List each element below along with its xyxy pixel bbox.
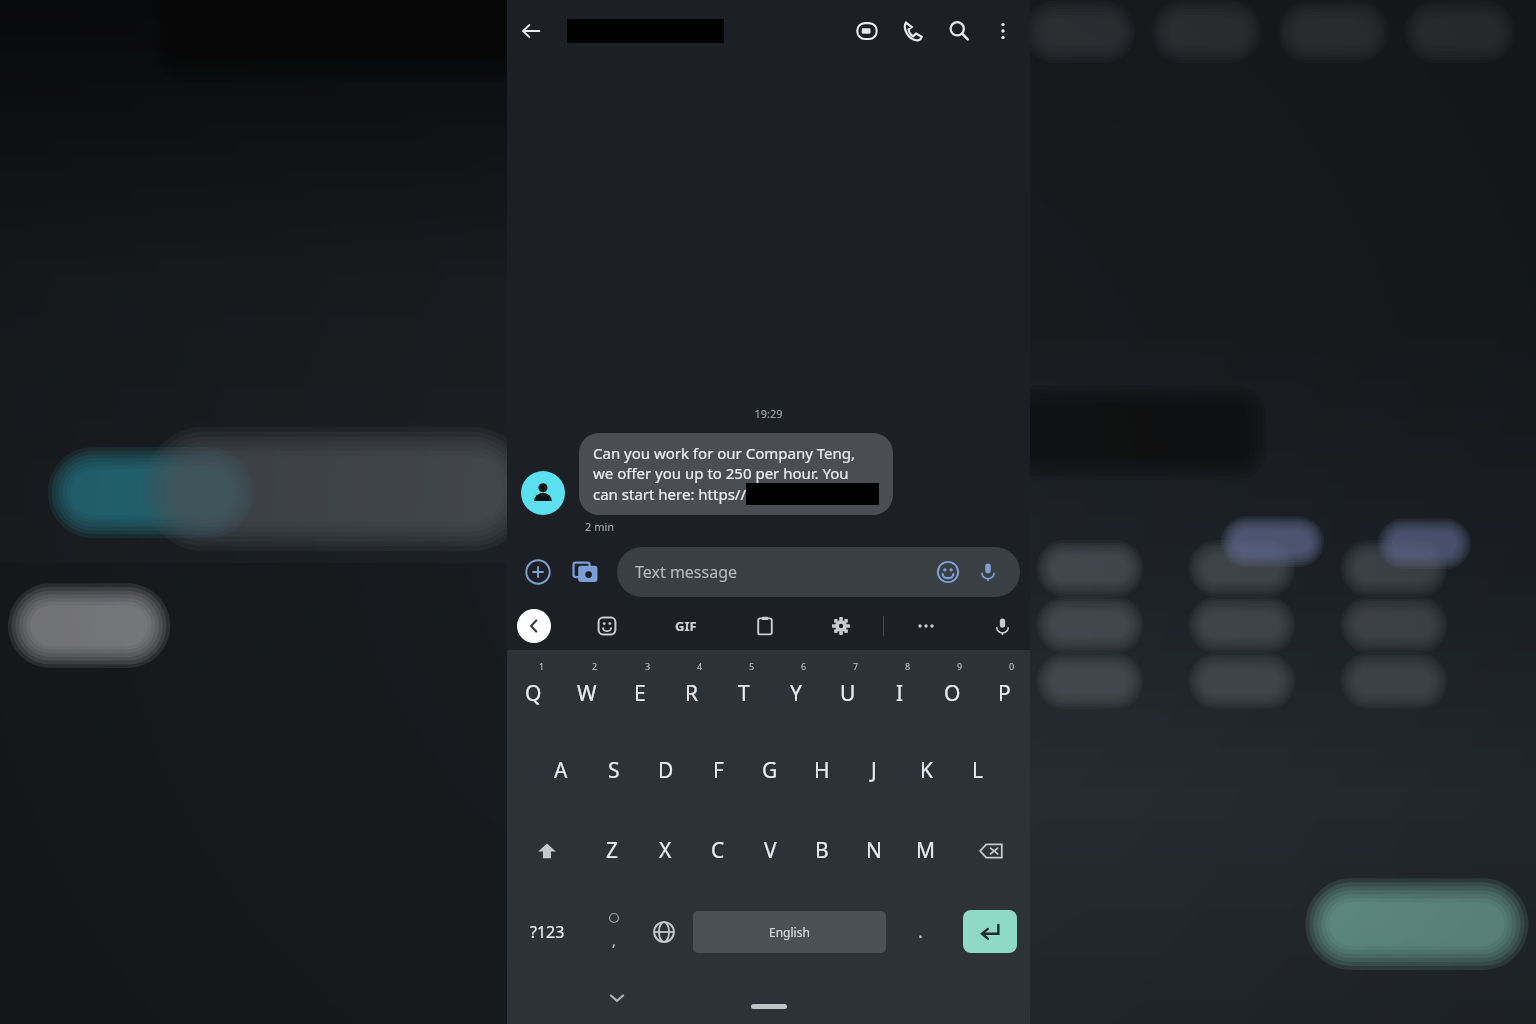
button[interactable]: J [848,730,900,810]
button[interactable]: Hide keyboard [599,980,635,1016]
button[interactable]: C [692,810,744,891]
button[interactable]: 7 [822,650,874,730]
staticText: Text message [635,561,738,583]
button[interactable]: F [692,730,744,810]
button[interactable]: 6 [770,650,822,730]
staticText: 5 [749,660,755,672]
staticText: N [866,836,882,865]
staticText: J [871,756,877,785]
button[interactable]: A [534,730,587,810]
button[interactable]: Emoji [934,558,962,586]
button[interactable]: Contact avatar [521,471,565,515]
staticText: 3 [645,660,651,672]
button[interactable]: Video call [844,8,890,54]
staticText: W [577,679,597,708]
button[interactable]: 0 [978,650,1030,730]
staticText: E [634,679,646,708]
staticText: English [769,924,810,940]
staticText: H [814,756,830,785]
button[interactable]: H [796,730,848,810]
button[interactable]: V [744,810,796,891]
button[interactable]: 9 [926,650,978,730]
button[interactable]: B [796,810,848,891]
staticText: 6 [801,660,807,672]
button[interactable]: Add attachment [521,555,555,589]
staticText: C [711,836,725,865]
button[interactable]: Clipboard [745,606,785,646]
staticText: 7 [853,660,859,672]
staticText: ?123 [530,921,565,943]
staticText: P [998,679,1011,708]
staticText: L [972,756,984,785]
button[interactable]: 8 [874,650,926,730]
button[interactable]: L [952,730,1004,810]
staticText: A [554,756,568,785]
staticText: . [918,919,923,944]
button[interactable]: Search [936,8,982,54]
button[interactable]: Back [507,7,555,55]
staticText: 0 [1009,660,1015,672]
button[interactable]: Voice input [974,558,1002,586]
button[interactable]: 3 [613,650,666,730]
button[interactable]: Backspace [952,810,1030,891]
staticText: O [944,679,961,708]
staticText: 8 [905,660,911,672]
staticText: we offer you up to 250 per hour. You [593,463,849,483]
button[interactable]: Z [586,810,639,891]
staticText: Q [525,679,542,708]
staticText: S [608,756,620,785]
button[interactable]: Collapse toolbar [517,609,551,643]
staticText: T [738,679,750,708]
button[interactable]: Stickers [587,606,627,646]
button[interactable]: S [587,730,640,810]
staticText: M [916,836,936,865]
staticText: G [762,756,778,785]
staticText: 2 [592,660,598,672]
button[interactable]: D [640,730,692,810]
button[interactable]: . [890,891,950,972]
staticText: U [840,679,856,708]
button[interactable]: Settings [821,606,861,646]
staticText: 4 [697,660,703,672]
button[interactable]: G [744,730,796,810]
button[interactable]: M [900,810,952,891]
button[interactable]: 1 [507,650,560,730]
button[interactable]: ?123 [507,891,588,972]
button[interactable]: Voice typing [982,606,1022,646]
staticText: Y [790,679,802,708]
button[interactable]: Change keyboard language [639,891,689,972]
button[interactable]: Home [751,1004,787,1009]
staticText: I [896,679,904,708]
staticText: GIF [675,617,697,635]
staticText: D [658,756,674,785]
button[interactable]: Enter [963,910,1017,953]
staticText: K [920,756,933,785]
staticText: 2 min [585,519,615,534]
button[interactable]: X [639,810,692,891]
button[interactable]: GIF [663,603,709,649]
button[interactable]: Can you work for our Company Teng, [579,433,893,515]
button[interactable]: Send photo [569,555,603,589]
button[interactable]: English [693,911,886,953]
button[interactable]: Text message [617,547,1020,597]
staticText: V [764,836,777,865]
staticText: Can you work for our Company Teng, [593,443,856,463]
staticText: F [713,756,724,785]
button[interactable]: K [900,730,952,810]
staticText: 19:29 [507,406,1030,421]
button[interactable]: N [848,810,900,891]
button[interactable]: More [906,606,946,646]
staticText: R [685,679,699,708]
button[interactable]: Emoji and comma [588,891,639,972]
staticText: , [612,931,616,950]
staticText: can start here: https// [593,484,746,504]
staticText: X [659,836,672,865]
button[interactable]: 4 [666,650,718,730]
button[interactable]: 2 [560,650,613,730]
button[interactable]: Call [890,8,936,54]
staticText: 1 [539,660,545,672]
button[interactable]: More options [982,10,1024,52]
button[interactable]: Shift [507,810,586,891]
button[interactable]: 5 [718,650,770,730]
